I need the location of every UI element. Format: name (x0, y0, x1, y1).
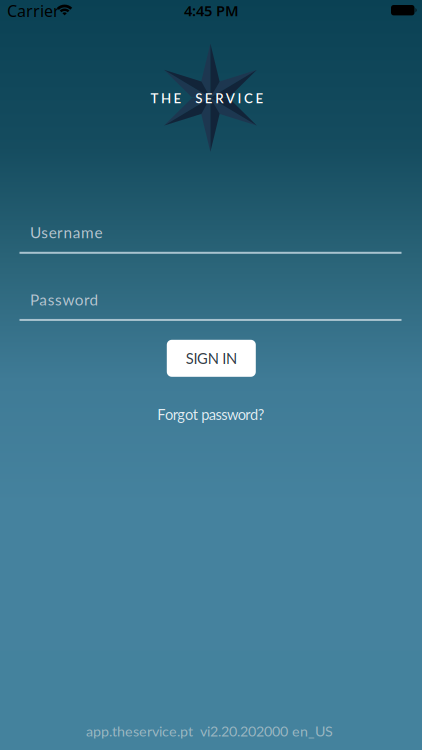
staticText: Carrier (7, 0, 60, 21)
staticText: Username (30, 223, 102, 241)
staticText: 4:45 PM (184, 1, 239, 20)
staticText: Password (30, 290, 98, 309)
staticText: Forgot password? (157, 405, 265, 423)
button[interactable]: Password (19, 290, 401, 321)
staticText: app.theservice.pt vi2.20.202000 en_US (86, 722, 333, 739)
button[interactable]: SIGN IN (167, 340, 256, 377)
staticText: SIGN IN (186, 349, 237, 367)
button[interactable]: Forgot password? (157, 405, 265, 423)
button[interactable]: Username (19, 223, 401, 254)
staticText: THE SERVICE (150, 90, 263, 106)
